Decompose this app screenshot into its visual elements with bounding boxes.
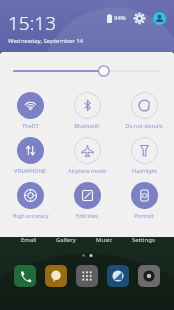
button[interactable]: Email (19, 228, 38, 244)
button[interactable]: Edit tiles (60, 182, 114, 219)
button[interactable]: App (138, 265, 160, 287)
staticText: High accuracy (12, 212, 49, 219)
button[interactable]: App (14, 265, 36, 287)
button[interactable]: Settings (132, 228, 155, 244)
button[interactable]: App (76, 265, 98, 287)
staticText: Airplane mode (68, 167, 106, 174)
staticText: 15:13 (8, 10, 57, 36)
staticText: Do not disturb (125, 122, 163, 129)
button[interactable]: Airplane mode (60, 137, 114, 174)
button[interactable]: Flashlight (117, 137, 171, 174)
button[interactable]: Settings (132, 11, 146, 25)
button[interactable]: Brightness (0, 64, 174, 78)
staticText: TheDT (22, 122, 39, 129)
button[interactable]: Music (95, 228, 114, 244)
button[interactable]: Portrait (117, 182, 171, 219)
button[interactable]: App (107, 265, 129, 287)
staticText: Flashlight (132, 167, 157, 174)
staticText: Email (21, 236, 37, 244)
staticText: 94% (114, 14, 126, 22)
button[interactable]: Do not disturb (117, 92, 171, 129)
button[interactable]: VINAPHONE (3, 137, 57, 174)
staticText: Gallery (56, 236, 76, 244)
staticText: VINAPHONE (14, 167, 46, 174)
staticText: Music (96, 236, 113, 244)
staticText: Settings (132, 236, 155, 244)
staticText: Wednesday, September 14 (8, 37, 84, 45)
button[interactable]: High accuracy (3, 182, 57, 219)
button[interactable]: App (45, 265, 67, 287)
staticText: Bluetooth (74, 122, 100, 129)
button[interactable]: TheDT (3, 92, 57, 129)
button[interactable]: User account (151, 10, 167, 26)
button[interactable]: Bluetooth (60, 92, 114, 129)
staticText: Edit tiles (76, 212, 98, 219)
staticText: Portrait (134, 212, 154, 219)
button[interactable]: Gallery (56, 228, 76, 244)
